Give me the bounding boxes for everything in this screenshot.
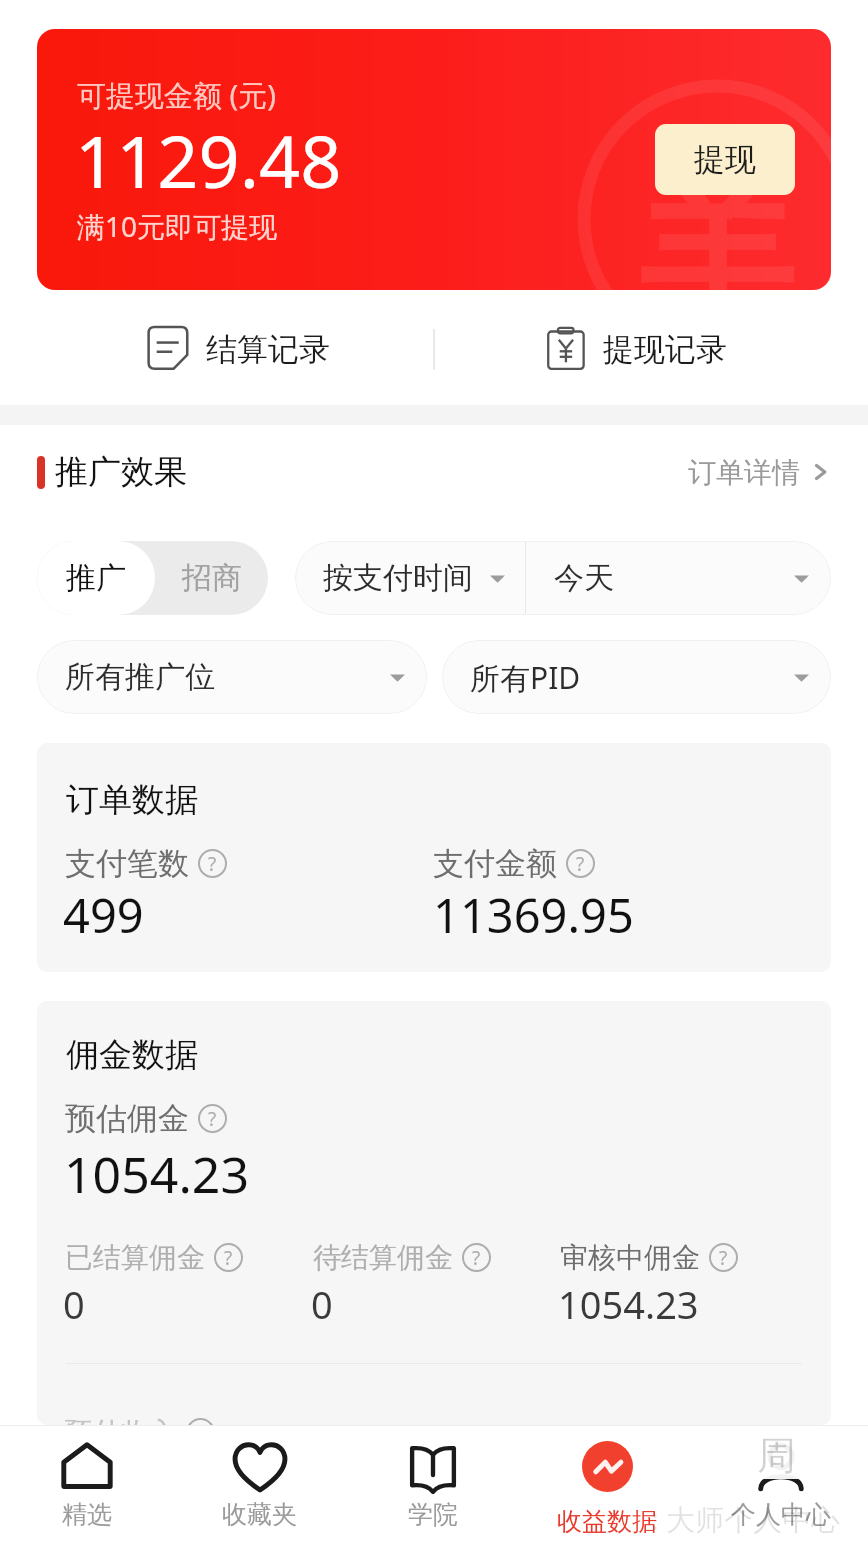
staticText: ? — [719, 1245, 728, 1271]
staticText: 提现记录 — [603, 330, 727, 369]
button[interactable]: 按支付时间 — [295, 541, 525, 615]
staticText: ? — [208, 1106, 217, 1132]
button[interactable]: Academy — [346, 1426, 520, 1557]
staticText: 审核中佣金 — [560, 1240, 700, 1275]
staticText: 精选 — [62, 1499, 112, 1530]
staticText: 个人中心 — [731, 1499, 831, 1530]
staticText: 订单数据 — [66, 779, 198, 821]
button[interactable]: 提现记录 — [545, 326, 727, 372]
staticText: 订单详情 — [688, 455, 800, 489]
button[interactable]: 订单详情 — [688, 451, 831, 493]
button[interactable]: Featured — [0, 1426, 173, 1557]
staticText: 所有PID — [470, 657, 581, 698]
staticText: ? — [576, 851, 585, 877]
staticText: 羊 — [639, 154, 794, 290]
button[interactable]: 招商 — [155, 541, 268, 615]
staticText: ? — [196, 1420, 205, 1425]
staticText: 今天 — [554, 559, 614, 597]
staticText: 招商 — [182, 559, 242, 597]
staticText: 满10元即可提现 — [77, 207, 278, 245]
staticText: 所有推广位 — [65, 658, 215, 696]
staticText: 0 — [63, 1278, 85, 1330]
staticText: 推广 — [66, 559, 126, 597]
staticText: 预估佣金 — [65, 1099, 189, 1138]
staticText: 周 — [757, 1431, 796, 1480]
staticText: 0 — [311, 1278, 333, 1330]
staticText: 收益数据 — [557, 1506, 657, 1537]
staticText: 支付笔数 — [65, 844, 189, 883]
staticText: 1054.23 — [558, 1278, 699, 1330]
staticText: : 大师个人中心 — [651, 1499, 841, 1539]
staticText: 1129.48 — [75, 111, 342, 209]
button[interactable]: Profile — [694, 1426, 868, 1557]
button[interactable]: 提现 — [655, 124, 795, 195]
button[interactable]: Favorites — [173, 1426, 346, 1557]
button[interactable]: 结算记录 — [147, 326, 330, 372]
staticText: 预估收入 — [65, 1415, 177, 1425]
staticText: ? — [472, 1245, 481, 1271]
staticText: 推广效果 — [55, 451, 187, 493]
staticText: 499 — [63, 883, 144, 947]
button[interactable]: 今天 — [526, 541, 831, 615]
button[interactable]: 所有推广位 — [37, 640, 427, 714]
staticText: 收藏夹 — [222, 1499, 297, 1530]
staticText: 学院 — [408, 1499, 458, 1530]
staticText: 提现 — [694, 140, 756, 179]
button[interactable]: 所有PID — [442, 640, 831, 714]
staticText: 11369.95 — [433, 883, 634, 947]
staticText: ? — [224, 1245, 233, 1271]
staticText: 可提现金额 (元) — [77, 75, 276, 115]
staticText: 佣金数据 — [66, 1034, 198, 1076]
staticText: 按支付时间 — [323, 559, 473, 597]
staticText: 支付金额 — [433, 844, 557, 883]
staticText: 待结算佣金 — [313, 1240, 453, 1275]
button[interactable]: 推广 — [37, 541, 155, 615]
staticText: ? — [208, 851, 217, 877]
staticText: 1054.23 — [64, 1140, 249, 1208]
button[interactable]: 收益数据 — [520, 1426, 694, 1557]
staticText: 已结算佣金 — [65, 1240, 205, 1275]
staticText: 结算记录 — [206, 330, 330, 369]
